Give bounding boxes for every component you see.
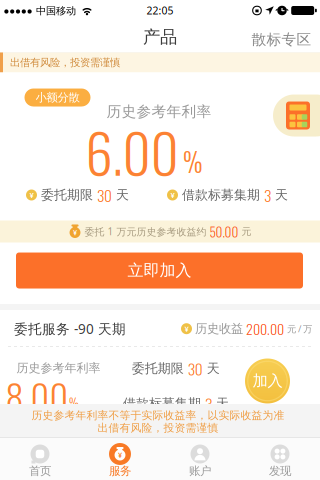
staticText: 30 <box>97 184 112 206</box>
staticText: 立即加入 <box>127 260 191 281</box>
staticText: ¥ <box>73 228 77 237</box>
button[interactable]: ¥ <box>80 437 160 480</box>
button[interactable]: 发现 <box>240 437 320 480</box>
staticText: 出借有风险，投资需谨慎 <box>10 56 120 69</box>
staticText: % <box>69 393 79 412</box>
staticText: 30 <box>188 357 203 380</box>
staticText: 加入 <box>252 371 282 391</box>
staticText: 天 <box>275 187 288 203</box>
staticText: ¥ <box>170 190 174 200</box>
button[interactable]: 账户 <box>160 437 240 480</box>
staticText: 服务 <box>109 464 131 478</box>
staticText: 历史参考年利率 <box>16 360 100 375</box>
staticText: 6.00 <box>85 110 178 191</box>
staticText: 委托期限 <box>41 187 93 203</box>
staticText: 元 <box>241 225 251 238</box>
staticText: 历史参考年利率不等于实际收益率，以实际收益为准 <box>31 409 284 422</box>
staticText: 8.00 <box>5 369 68 423</box>
staticText: 200.00 <box>246 318 284 339</box>
staticText: 账户 <box>189 464 211 478</box>
button[interactable]: 立即加入 <box>16 252 303 288</box>
staticText: % <box>183 141 203 181</box>
staticText: ¥ <box>118 450 122 460</box>
button[interactable]: 加入 <box>245 358 290 403</box>
staticText: 3 <box>264 184 271 206</box>
staticText: 小额分散 <box>35 90 79 105</box>
staticText: ¥ <box>29 190 33 200</box>
staticText: 散标专区 <box>251 30 311 49</box>
staticText: 历史参考年利率 <box>106 102 211 121</box>
staticText: 元 / 万 <box>287 322 312 335</box>
button[interactable]: 收益计算器 <box>273 94 320 136</box>
staticText: 3 <box>205 392 212 415</box>
button[interactable]: 首页 <box>0 437 80 480</box>
staticText: 委托服务 -90 天期 <box>14 319 126 338</box>
staticText: 历史收益 <box>195 321 243 336</box>
staticText: 委托期限 <box>132 360 184 377</box>
staticText: 出借有风险，投资需谨慎 <box>97 421 218 435</box>
staticText: 天 <box>216 395 229 412</box>
staticText: 产品 <box>143 26 177 48</box>
staticText: 中国移动 <box>36 5 76 17</box>
staticText: 发现 <box>269 464 291 478</box>
button[interactable]: 散标专区 <box>245 23 317 55</box>
staticText: 50.00 <box>209 222 238 241</box>
staticText: 22:05 <box>146 3 173 18</box>
staticText: 借款标募集期 <box>123 395 201 412</box>
staticText: 首页 <box>29 464 51 478</box>
staticText: 天 <box>116 187 129 203</box>
staticText: ¥ <box>184 323 188 334</box>
staticText: 委托 1 万元历史参考收益约 <box>84 225 206 238</box>
staticText: 天 <box>207 360 220 377</box>
staticText: 借款标募集期 <box>182 187 260 203</box>
